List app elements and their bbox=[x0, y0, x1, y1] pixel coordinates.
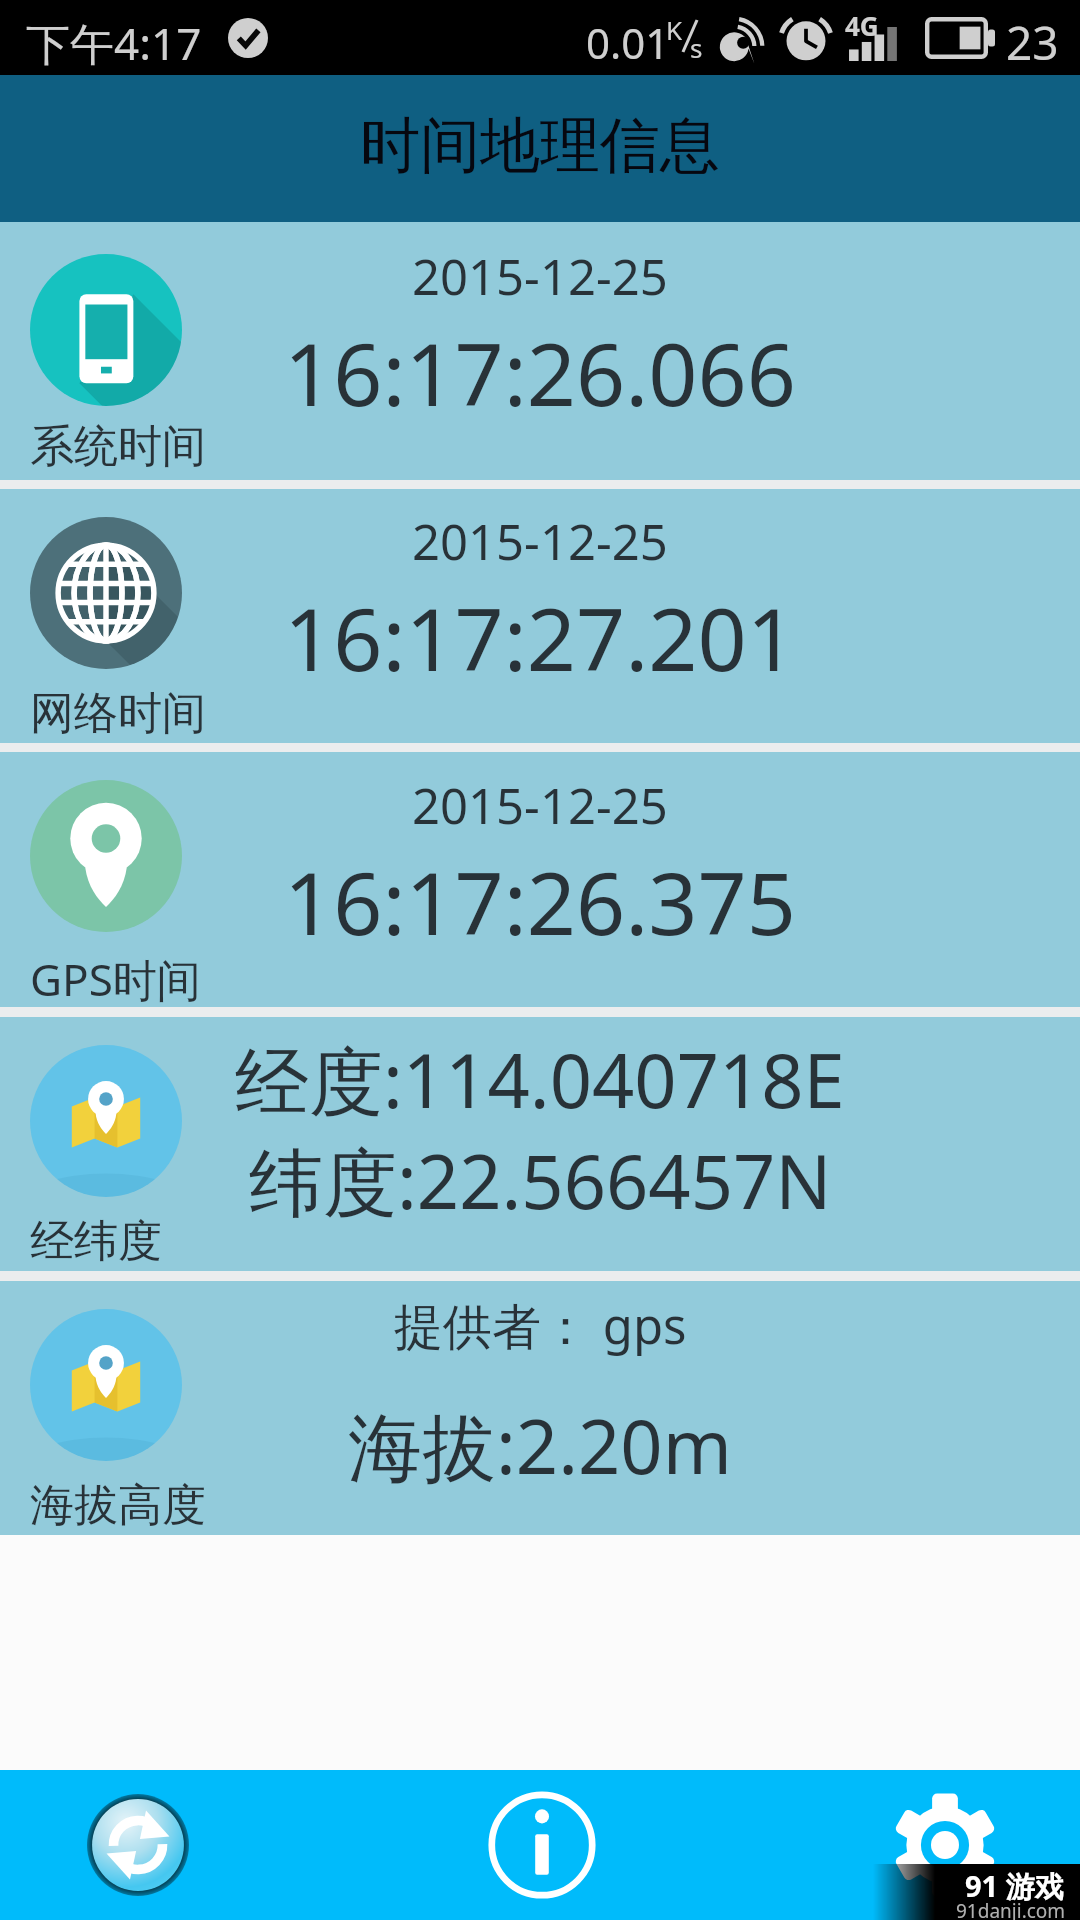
staticText: 时间地理信息 bbox=[360, 108, 720, 184]
staticText: 0.01 bbox=[586, 14, 670, 71]
button[interactable]: GPS时间 bbox=[0, 752, 1080, 1007]
staticText: 2015-12-25 bbox=[412, 508, 668, 575]
staticText: s bbox=[690, 30, 703, 65]
button[interactable]: Refresh bbox=[58, 1770, 218, 1920]
staticText: 网络时间 bbox=[30, 686, 206, 741]
staticText: 16:17:27.201 bbox=[284, 579, 796, 696]
staticText: 23 bbox=[1006, 11, 1059, 74]
staticText: 提供者： gps bbox=[394, 1292, 687, 1359]
staticText: 2015-12-25 bbox=[412, 772, 668, 839]
staticText: 16:17:26.375 bbox=[284, 843, 796, 960]
staticText: 经纬度 bbox=[30, 1214, 162, 1269]
staticText: 经度:114.040718E bbox=[235, 1029, 845, 1130]
staticText: 2015-12-25 bbox=[412, 243, 668, 310]
button[interactable]: 经纬度 bbox=[0, 1017, 1080, 1271]
staticText: 16:17:26.066 bbox=[284, 314, 796, 431]
button[interactable]: 海拔高度 bbox=[0, 1281, 1080, 1535]
button[interactable]: Info bbox=[462, 1770, 622, 1920]
staticText: 91danji.com bbox=[956, 1898, 1066, 1920]
button[interactable]: 网络时间 bbox=[0, 489, 1080, 743]
staticText: 91 游戏 bbox=[965, 1866, 1064, 1906]
staticText: 纬度:22.566457N bbox=[249, 1130, 832, 1231]
button[interactable]: Settings bbox=[865, 1770, 1025, 1920]
staticText: GPS时间 bbox=[30, 949, 201, 1009]
staticText: 海拔:2.20m bbox=[348, 1395, 732, 1496]
staticText: 下午4:17 bbox=[26, 13, 202, 73]
staticText: 4G bbox=[845, 8, 879, 43]
button[interactable]: 系统时间 bbox=[0, 222, 1080, 480]
staticText: 海拔高度 bbox=[30, 1478, 206, 1533]
staticText: K bbox=[666, 12, 683, 47]
staticText: 系统时间 bbox=[30, 419, 206, 474]
